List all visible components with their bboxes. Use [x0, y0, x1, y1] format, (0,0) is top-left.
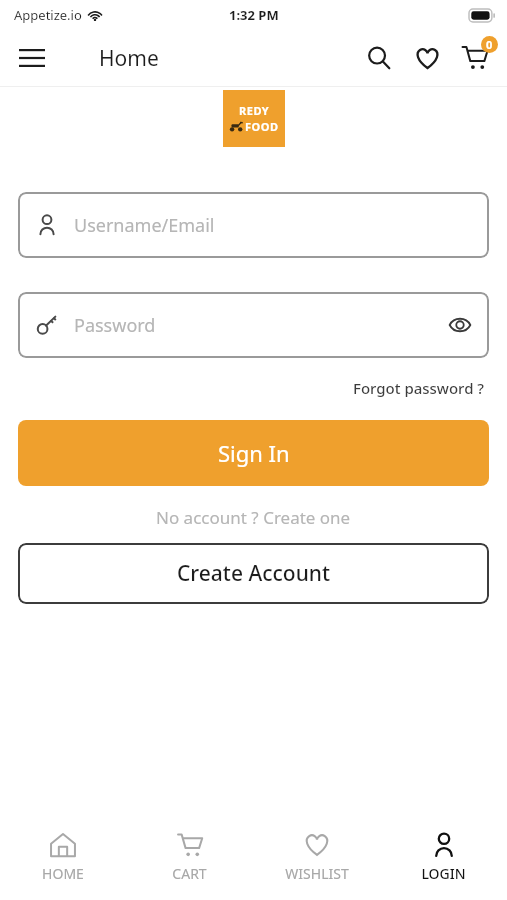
staticText: 1:32 PM	[229, 6, 279, 24]
button[interactable]: Password	[18, 292, 489, 358]
staticText: LOGIN	[421, 864, 466, 883]
staticText: 0	[486, 37, 493, 52]
staticText: Password	[74, 313, 449, 338]
button[interactable]: Search	[355, 34, 403, 82]
button[interactable]: Menu	[8, 34, 56, 82]
button[interactable]: Redy Food logo	[223, 90, 285, 147]
button[interactable]: Sign In	[18, 420, 489, 486]
staticText: Create Account	[177, 559, 331, 588]
button[interactable]: Wishlist	[403, 34, 451, 82]
staticText: Username/Email	[74, 213, 471, 238]
button[interactable]: WISHLIST	[253, 812, 380, 900]
button[interactable]: No account ? Create one	[150, 504, 357, 531]
staticText: No account ? Create one	[156, 506, 351, 529]
staticText: CART	[172, 864, 207, 883]
button[interactable]: LOGIN	[380, 812, 507, 900]
staticText: REDY	[239, 103, 270, 118]
staticText: HOME	[42, 864, 84, 883]
button[interactable]: CART	[126, 812, 253, 900]
staticText: FOOD	[245, 119, 279, 134]
staticText: Appetize.io	[14, 6, 82, 24]
staticText: Forgot password ?	[353, 378, 485, 398]
staticText: WISHLIST	[285, 864, 349, 883]
button[interactable]: Create Account	[18, 543, 489, 604]
staticText: Home	[99, 44, 159, 73]
button[interactable]: Username/Email	[18, 192, 489, 258]
staticText: Sign In	[218, 438, 290, 468]
button[interactable]: HOME	[0, 812, 126, 900]
button[interactable]: Forgot password ?	[349, 374, 489, 402]
button[interactable]: Cart	[451, 34, 499, 82]
